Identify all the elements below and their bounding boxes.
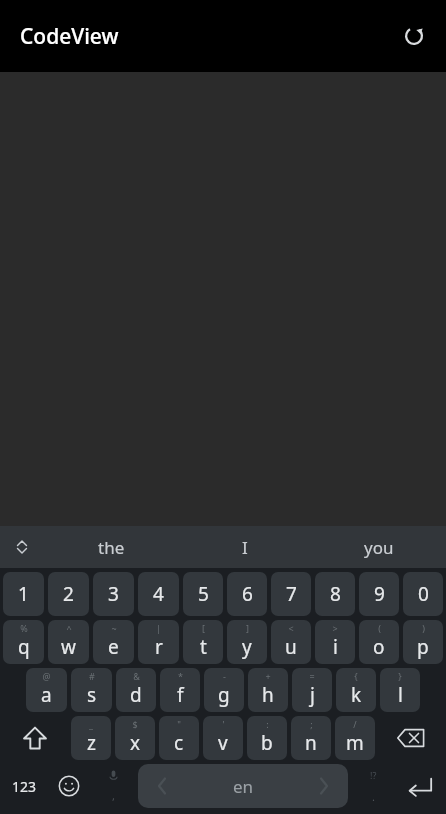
button[interactable]: Refresh (392, 14, 436, 58)
staticText: z (87, 730, 96, 756)
button[interactable]: $ (115, 716, 155, 760)
staticText: ] (246, 622, 249, 634)
staticText: I (242, 536, 248, 559)
staticText: p (417, 634, 429, 660)
staticText: CodeView (20, 22, 119, 51)
staticText: % (20, 622, 28, 634)
staticText: & (133, 670, 140, 682)
staticText: + (265, 670, 271, 682)
staticText: l (398, 682, 403, 708)
staticText: n (305, 730, 317, 756)
button[interactable]: ( (359, 620, 399, 664)
button[interactable]: [ (183, 620, 223, 664)
button[interactable]: ) (403, 620, 443, 664)
button[interactable]: @ (26, 668, 67, 712)
button[interactable]: Backspace (377, 716, 445, 760)
button[interactable]: " (159, 716, 199, 760)
staticText: x (130, 730, 141, 756)
staticText: v (218, 730, 228, 756)
staticText: y (242, 634, 252, 660)
staticText: i (333, 634, 338, 660)
button[interactable]: 4 (138, 572, 179, 616)
staticText: the (98, 536, 125, 559)
button[interactable]: 1 (3, 572, 44, 616)
button[interactable]: ^ (48, 620, 89, 664)
button[interactable]: # (71, 668, 112, 712)
staticText: 6 (242, 581, 253, 607)
button[interactable]: Enter (395, 764, 445, 808)
button[interactable]: the (44, 526, 178, 568)
button[interactable]: - (204, 668, 244, 712)
staticText: < (288, 622, 294, 634)
staticText: c (174, 730, 184, 756)
staticText: _ (89, 718, 93, 730)
button[interactable]: 6 (227, 572, 267, 616)
button[interactable]: Expand suggestions (0, 526, 44, 568)
button[interactable]: > (315, 620, 355, 664)
staticText: . (372, 789, 375, 804)
staticText: = (309, 670, 315, 682)
staticText: f (177, 682, 184, 708)
staticText: j (310, 682, 315, 708)
button[interactable]: ; (291, 716, 331, 760)
button[interactable]: 123 (1, 764, 47, 808)
button[interactable]: ' (203, 716, 243, 760)
button[interactable]: Voice input (91, 764, 135, 808)
staticText: ; (310, 718, 313, 730)
staticText: !? (370, 769, 377, 781)
button[interactable]: ] (227, 620, 267, 664)
staticText: 5 (198, 581, 209, 607)
staticText: 7 (286, 581, 297, 607)
staticText: q (18, 634, 30, 660)
staticText: @ (42, 670, 51, 682)
button[interactable]: you (312, 526, 446, 568)
staticText: b (261, 730, 273, 756)
button[interactable]: 5 (183, 572, 223, 616)
staticText: $ (132, 718, 138, 730)
staticText: w (61, 634, 76, 660)
button[interactable]: 8 (315, 572, 355, 616)
button[interactable]: Emoji (47, 764, 91, 808)
staticText: 2 (63, 581, 74, 607)
button[interactable]: | (138, 620, 179, 664)
button[interactable]: : (247, 716, 287, 760)
staticText: 4 (153, 581, 164, 607)
button[interactable]: } (380, 668, 420, 712)
button[interactable]: ~ (93, 620, 134, 664)
button[interactable]: Shift (1, 716, 69, 760)
staticText: | (156, 622, 161, 634)
staticText: - (223, 670, 226, 682)
staticText: " (177, 718, 181, 730)
staticText: 0 (418, 581, 429, 607)
button[interactable]: 3 (93, 572, 134, 616)
staticText: [ (202, 622, 205, 634)
button[interactable]: 0 (403, 572, 443, 616)
staticText: o (373, 634, 385, 660)
button[interactable]: * (160, 668, 200, 712)
staticText: k (351, 682, 362, 708)
button[interactable]: = (292, 668, 332, 712)
button[interactable]: % (3, 620, 44, 664)
staticText: 9 (374, 581, 385, 607)
staticText: d (130, 682, 142, 708)
button[interactable]: & (116, 668, 156, 712)
button[interactable]: 2 (48, 572, 89, 616)
staticText: g (218, 682, 230, 708)
button[interactable]: 7 (271, 572, 311, 616)
staticText: 123 (12, 777, 37, 796)
button[interactable]: en (138, 764, 348, 808)
staticText: 3 (108, 581, 119, 607)
button[interactable]: + (248, 668, 288, 712)
button[interactable]: / (335, 716, 375, 760)
button[interactable]: { (336, 668, 376, 712)
staticText: ~ (111, 622, 117, 634)
button[interactable]: 9 (359, 572, 399, 616)
button[interactable]: _ (71, 716, 111, 760)
button[interactable]: < (271, 620, 311, 664)
staticText: you (364, 536, 394, 559)
staticText: ) (422, 622, 425, 634)
button[interactable]: I (178, 526, 312, 568)
staticText: m (346, 730, 364, 756)
staticText: e (108, 634, 119, 660)
